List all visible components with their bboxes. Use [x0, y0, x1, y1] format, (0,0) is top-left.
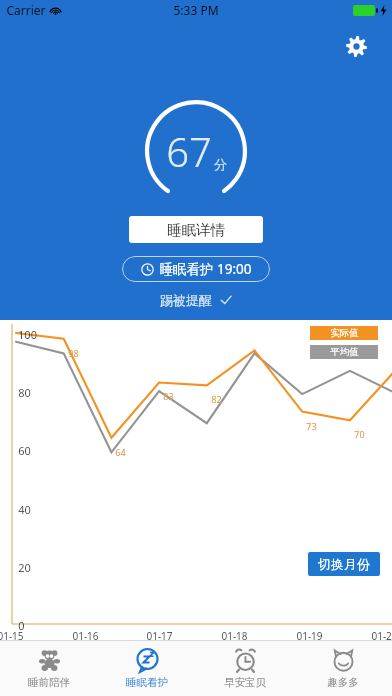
staticText: 睡眠详情 [167, 221, 225, 239]
staticText: 73 [306, 420, 317, 432]
button[interactable]: 切换月份 [308, 552, 380, 576]
staticText: 20 [18, 560, 31, 575]
staticText: 平均值 [330, 346, 359, 358]
staticText: 睡眠看护 19:00 [159, 260, 252, 278]
staticText: 01-20 [371, 629, 392, 643]
staticText: 98 [68, 347, 79, 359]
staticText: 0 [18, 618, 25, 633]
staticText: 睡眠看护 [126, 676, 168, 689]
button[interactable]: 睡前陪伴 [0, 641, 98, 696]
staticText: 70 [354, 428, 365, 440]
staticText: 67 [166, 124, 212, 178]
staticText: 82 [211, 393, 222, 405]
staticText: 60 [18, 443, 31, 458]
staticText: 早安宝贝 [224, 676, 266, 689]
staticText: 分 [214, 156, 227, 172]
staticText: 40 [18, 502, 31, 517]
button[interactable]: Settings [342, 32, 370, 60]
staticText: 踢被提醒 [160, 292, 212, 308]
staticText: 83 [163, 390, 174, 402]
button[interactable]: 踢被提醒 [160, 292, 232, 308]
staticText: 01-15 [0, 629, 24, 643]
staticText: 64 [115, 446, 126, 458]
staticText: 睡前陪伴 [28, 676, 70, 689]
button[interactable]: 睡眠看护 19:00 [122, 256, 270, 282]
staticText: Carrier [6, 2, 46, 18]
staticText: 100 [18, 327, 37, 342]
staticText: 趣多多 [327, 676, 359, 689]
staticText: 01-17 [146, 629, 173, 643]
staticText: 切换月份 [318, 556, 370, 572]
staticText: 01-16 [72, 629, 99, 643]
staticText: 实际值 [330, 327, 359, 339]
button[interactable]: 睡眠看护 [98, 641, 196, 696]
staticText: 01-19 [296, 629, 323, 643]
button[interactable]: 趣多多 [294, 641, 392, 696]
staticText: 01-18 [221, 629, 248, 643]
staticText: 80 [18, 385, 31, 400]
button[interactable]: 睡眠详情 [129, 216, 263, 243]
staticText: 5:33 PM [173, 2, 219, 18]
button[interactable]: 早安宝贝 [196, 641, 294, 696]
